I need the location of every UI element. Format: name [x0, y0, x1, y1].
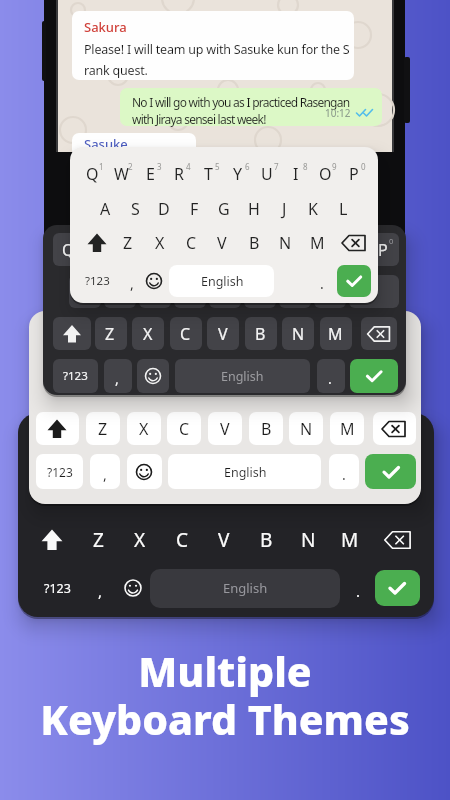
- button[interactable]: [373, 412, 416, 445]
- button[interactable]: [227, 233, 259, 266]
- staticText: 0: [389, 236, 394, 246]
- button[interactable]: [297, 233, 329, 266]
- staticText: 6: [250, 236, 255, 246]
- button[interactable]: [279, 275, 311, 308]
- staticText: W: [96, 239, 111, 261]
- button[interactable]: [150, 569, 340, 608]
- staticText: Y: [233, 163, 243, 185]
- button[interactable]: [375, 570, 420, 606]
- button[interactable]: [314, 275, 346, 308]
- staticText: ,: [130, 274, 134, 293]
- staticText: X: [143, 323, 153, 345]
- button[interactable]: [53, 233, 85, 266]
- button[interactable]: [169, 265, 274, 297]
- button[interactable]: [330, 412, 364, 445]
- staticText: 7: [285, 236, 290, 246]
- staticText: T: [204, 163, 213, 185]
- staticText: P: [378, 239, 388, 261]
- button[interactable]: [72, 11, 354, 80]
- button[interactable]: [337, 265, 371, 297]
- staticText: 2: [128, 161, 133, 172]
- button[interactable]: [170, 317, 202, 350]
- staticText: V: [218, 527, 230, 553]
- button[interactable]: [95, 317, 127, 350]
- button[interactable]: [137, 359, 169, 393]
- button[interactable]: [157, 233, 189, 266]
- button[interactable]: [167, 412, 201, 445]
- button[interactable]: [367, 275, 399, 308]
- staticText: S: [131, 198, 140, 220]
- button[interactable]: [209, 275, 241, 308]
- button[interactable]: [320, 317, 352, 350]
- button[interactable]: [90, 454, 120, 489]
- staticText: B: [255, 323, 266, 345]
- button[interactable]: [349, 275, 381, 308]
- button[interactable]: [208, 412, 242, 445]
- button[interactable]: [317, 359, 345, 393]
- button[interactable]: [249, 412, 283, 445]
- staticText: N: [301, 527, 316, 553]
- button[interactable]: [192, 233, 224, 266]
- staticText: O: [319, 163, 332, 185]
- staticText: H: [248, 198, 260, 220]
- button[interactable]: [120, 88, 382, 126]
- button[interactable]: [329, 454, 359, 489]
- staticText: 3: [157, 161, 162, 172]
- staticText: English: [221, 368, 264, 385]
- button[interactable]: [244, 275, 276, 308]
- button[interactable]: [282, 317, 314, 350]
- staticText: .: [342, 465, 346, 484]
- button[interactable]: [207, 317, 239, 350]
- button[interactable]: [168, 454, 321, 489]
- button[interactable]: [72, 133, 196, 157]
- button[interactable]: [174, 275, 206, 308]
- staticText: M: [341, 527, 359, 553]
- staticText: H: [253, 281, 265, 303]
- button[interactable]: [175, 359, 310, 393]
- button[interactable]: [53, 359, 98, 393]
- button[interactable]: [127, 454, 162, 489]
- staticText: .: [320, 274, 324, 293]
- button[interactable]: [53, 317, 91, 350]
- button[interactable]: [69, 275, 101, 308]
- button[interactable]: [36, 412, 79, 445]
- button[interactable]: [350, 359, 398, 393]
- staticText: A: [100, 198, 111, 220]
- button[interactable]: [104, 359, 132, 393]
- staticText: E: [146, 163, 155, 185]
- staticText: N: [279, 232, 292, 254]
- staticText: No I will go with you as I practiced Ras…: [132, 94, 350, 110]
- button[interactable]: [262, 233, 294, 266]
- button[interactable]: [36, 454, 83, 489]
- staticText: M: [310, 232, 325, 254]
- button[interactable]: [245, 317, 277, 350]
- button[interactable]: [127, 412, 161, 445]
- staticText: J: [282, 198, 287, 220]
- button[interactable]: [332, 233, 364, 266]
- staticText: 8: [320, 236, 325, 246]
- button[interactable]: [86, 412, 120, 445]
- button[interactable]: [87, 233, 119, 266]
- staticText: 4: [186, 161, 191, 172]
- button[interactable]: [365, 454, 416, 489]
- staticText: .: [328, 369, 332, 388]
- staticText: ,: [103, 465, 107, 484]
- button[interactable]: [139, 275, 171, 308]
- button[interactable]: [122, 233, 154, 266]
- button[interactable]: [367, 233, 399, 266]
- button[interactable]: [132, 317, 164, 350]
- staticText: V: [218, 323, 228, 345]
- button[interactable]: [361, 317, 397, 350]
- button[interactable]: [104, 275, 136, 308]
- button[interactable]: [289, 412, 323, 445]
- staticText: Z: [123, 232, 133, 254]
- staticText: 9: [355, 236, 360, 246]
- staticText: 10:12: [325, 106, 351, 120]
- staticText: X: [155, 232, 165, 254]
